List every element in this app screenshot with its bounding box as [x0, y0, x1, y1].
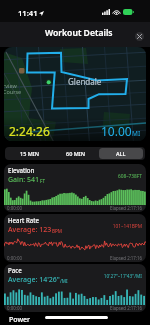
button[interactable]: Elevation — [4, 164, 146, 212]
staticText: 0:00:00 — [7, 305, 22, 311]
staticText: Heart Rate — [8, 216, 39, 224]
staticText: 0:00:00 — [7, 255, 22, 261]
staticText: 15 MIN — [20, 150, 39, 157]
staticText: 0:00:00 — [7, 205, 22, 211]
button[interactable]: Heart Rate — [4, 214, 146, 262]
staticText: 101–141BPM — [112, 223, 142, 230]
button[interactable]: Close — [135, 32, 144, 41]
staticText: 10'27"–17'43"/MI — [103, 273, 142, 280]
staticText: Average: 123 — [8, 225, 52, 235]
button[interactable]: ALL — [99, 148, 143, 159]
staticText: Elapsed 2:17:16 — [110, 305, 143, 311]
staticText: 2:24:26 — [9, 123, 50, 139]
staticText: MI — [132, 129, 141, 138]
staticText: Elapsed 2:17:16 — [110, 205, 143, 211]
button[interactable]: 15 MIN — [7, 148, 51, 159]
staticText: Elapsed 2:17:16 — [110, 255, 143, 261]
button[interactable]: Pace — [4, 264, 146, 312]
staticText: Average: 14'26" — [8, 275, 60, 285]
staticText: ALL — [116, 150, 126, 157]
staticText: 10.00 — [101, 123, 132, 139]
staticText: Pace — [8, 266, 22, 274]
staticText: BPM — [52, 228, 63, 234]
staticText: 608–738FT — [117, 173, 142, 180]
staticText: 11:41 — [18, 8, 38, 18]
staticText: FT — [40, 178, 46, 184]
staticText: Elevation — [8, 166, 35, 174]
staticText: Gain: 541 — [8, 175, 40, 185]
staticText: rview Course — [4, 82, 22, 96]
staticText: /MI — [60, 278, 68, 284]
button[interactable]: 60 MIN — [53, 148, 97, 159]
staticText: 60 MIN — [66, 150, 85, 157]
button[interactable]: Route map — [4, 47, 146, 141]
staticText: Power — [9, 315, 31, 325]
staticText: Glendale — [68, 76, 102, 87]
staticText: Workout Details — [45, 27, 113, 39]
